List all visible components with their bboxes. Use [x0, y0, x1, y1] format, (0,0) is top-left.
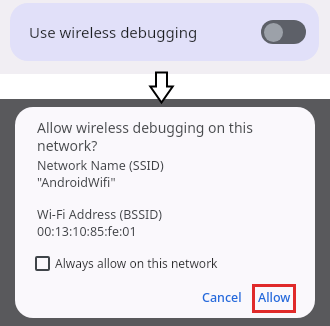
button[interactable]: Cancel [188, 279, 256, 315]
staticText: Always allow on this network [55, 255, 218, 271]
staticText: Allow wireless debugging on this network… [37, 118, 253, 155]
button[interactable]: Use wireless debugging [10, 3, 319, 61]
button[interactable]: Allow [243, 279, 305, 315]
button[interactable] [261, 20, 306, 44]
staticText: Network Name (SSID) [37, 157, 164, 174]
staticText: "AndroidWifi" [37, 174, 116, 191]
staticText: Use wireless debugging [29, 22, 198, 42]
staticText: 00:13:10:85:fe:01 [37, 223, 137, 240]
staticText: Allow [258, 289, 291, 306]
staticText: Wi-Fi Address (BSSID) [37, 206, 163, 223]
button[interactable]: Always allow on this network [35, 255, 218, 271]
staticText: Cancel [202, 289, 242, 306]
